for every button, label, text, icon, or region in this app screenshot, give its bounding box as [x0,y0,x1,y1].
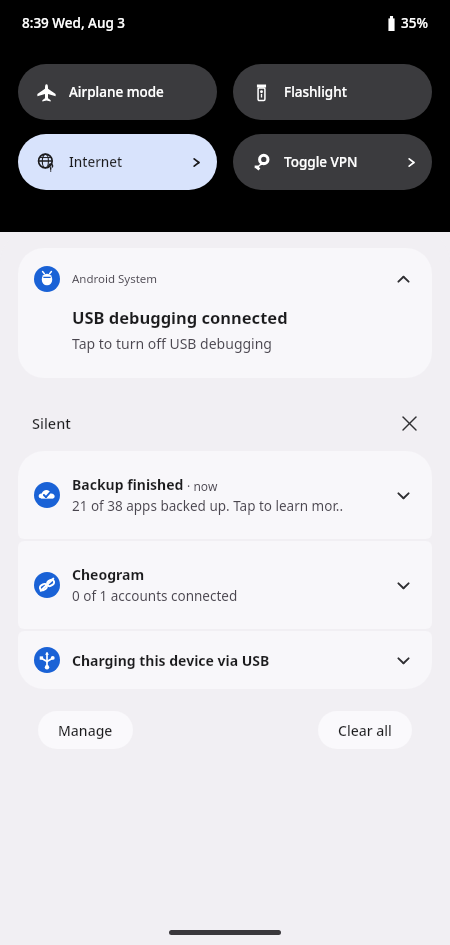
button[interactable]: Charging this device via USB [18,631,432,689]
staticText: USB debugging connected [72,306,288,328]
staticText: Clear all [338,721,392,740]
staticText: 35% [401,14,428,32]
staticText: 21 of 38 apps backed up. Tap to learn mo… [72,497,344,515]
staticText: Charging this device via USB [72,651,270,670]
staticText: 0 of 1 accounts connected [72,587,238,605]
staticText: Manage [58,721,113,740]
staticText: Toggle VPN [284,153,358,171]
button[interactable]: Clear all [318,711,412,749]
staticText: · now [184,478,218,494]
button[interactable]: Expand notification [388,645,418,675]
button[interactable]: Toggle VPN [233,134,432,190]
staticText: Airplane mode [69,83,164,101]
staticText: Silent [32,413,71,433]
button[interactable]: Internet [18,134,217,190]
staticText: Android System [72,271,158,287]
button[interactable]: Flashlight [233,64,432,120]
button[interactable]: Backup finished [18,451,432,539]
staticText: 8:39 Wed, Aug 3 [22,14,126,32]
button[interactable]: Clear silent notifications [394,408,424,438]
button[interactable]: Manage [38,711,133,749]
staticText: Cheogram [72,565,145,584]
staticText: Tap to turn off USB debugging [72,334,272,353]
button[interactable]: Cheogram [18,541,432,629]
button[interactable]: Expand notification [388,480,418,510]
button[interactable]: Android System [18,248,432,378]
button[interactable]: Airplane mode [18,64,217,120]
button[interactable]: Expand notification [388,570,418,600]
staticText: Backup finished [72,475,184,494]
button[interactable]: Collapse notification [388,264,418,294]
staticText: Flashlight [284,83,347,101]
staticText: Internet [69,153,123,171]
